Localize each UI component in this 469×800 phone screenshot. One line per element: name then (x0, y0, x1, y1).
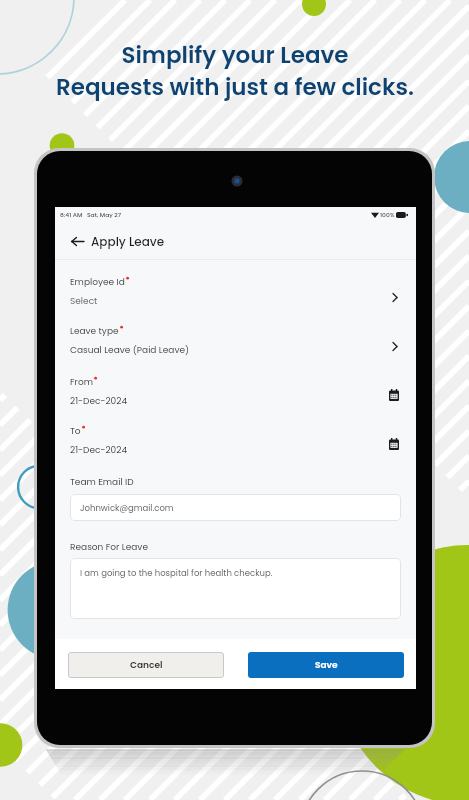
staticText: Team Email ID (70, 476, 134, 489)
staticText: 21-Dec-2024 (70, 395, 128, 408)
staticText: Select (70, 295, 98, 308)
button[interactable]: Save (248, 652, 404, 678)
staticText: Reason For Leave (70, 541, 148, 554)
button[interactable]: From (70, 376, 401, 408)
staticText: From (70, 376, 93, 389)
staticText: Leave type (70, 325, 119, 338)
staticText: 100% (380, 211, 395, 219)
staticText: To (70, 425, 81, 438)
staticText: Save (315, 659, 338, 672)
button[interactable]: Employee Id (70, 276, 401, 308)
other: Open (388, 339, 402, 353)
staticText: Sat, May 27 (87, 211, 122, 219)
staticText: Casual Leave (Paid Leave) (70, 344, 190, 357)
staticText: Simplify your Leave (121, 39, 349, 71)
button[interactable]: I am going to the hospital for health ch… (70, 558, 401, 619)
staticText: 8:41 AM (60, 211, 83, 219)
button[interactable]: Back (66, 230, 88, 252)
staticText: Employee Id (70, 276, 125, 289)
staticText: Cancel (130, 659, 163, 672)
other: Open (388, 290, 402, 304)
staticText: 21-Dec-2024 (70, 444, 128, 457)
button[interactable]: Johnwick@gmail.com (70, 494, 401, 521)
staticText: Johnwick@gmail.com (80, 502, 174, 514)
staticText: Requests with just a few clicks. (56, 71, 414, 103)
staticText: I am going to the hospital for health ch… (80, 567, 273, 579)
button[interactable]: Leave type (70, 325, 401, 357)
button[interactable]: Cancel (68, 652, 224, 678)
other: Pick date (387, 388, 401, 402)
staticText: Apply Leave (91, 233, 165, 250)
button[interactable]: To (70, 425, 401, 457)
other: Pick date (387, 437, 401, 451)
